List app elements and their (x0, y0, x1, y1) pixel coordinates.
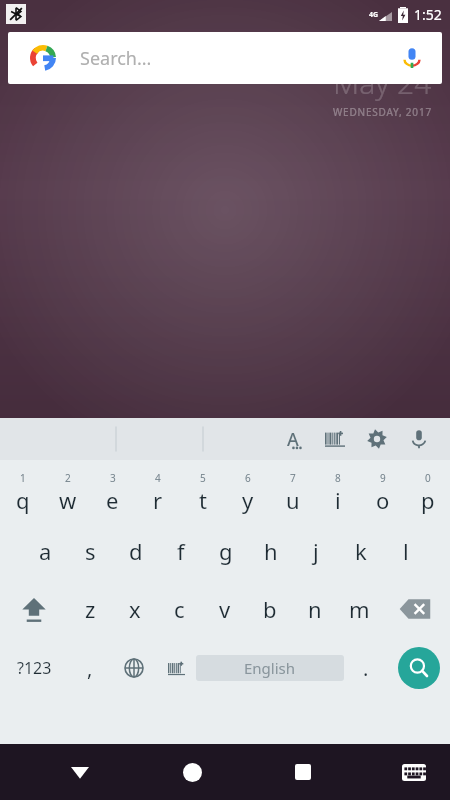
staticText: t (199, 485, 207, 515)
staticText: r (153, 485, 163, 515)
staticText: English (244, 658, 296, 678)
button[interactable]: 9 (360, 464, 405, 522)
button[interactable]: l (383, 522, 428, 580)
staticText: 6 (245, 471, 251, 485)
staticText: q (16, 485, 30, 515)
button[interactable]: Scan barcode (156, 638, 196, 698)
staticText: Search... (80, 46, 152, 71)
button[interactable]: . (344, 638, 388, 698)
staticText: . (363, 655, 369, 682)
staticText: w (59, 485, 77, 515)
button[interactable]: Search (398, 647, 440, 689)
button[interactable]: g (203, 522, 248, 580)
staticText: d (129, 536, 143, 566)
staticText: a (39, 536, 52, 566)
button[interactable]: 3 (90, 464, 135, 522)
button[interactable]: 4 (135, 464, 180, 522)
staticText: x (129, 594, 141, 624)
staticText: f (177, 536, 185, 566)
staticText: , (87, 655, 93, 682)
button[interactable]: j (293, 522, 338, 580)
button[interactable]: Voice search (398, 44, 426, 72)
staticText: u (286, 485, 300, 515)
staticText: m (349, 594, 370, 624)
button[interactable]: Scan barcode (318, 422, 352, 456)
staticText: 1 (20, 471, 26, 485)
staticText: 7 (290, 471, 296, 485)
staticText: 5 (200, 471, 206, 485)
staticText: o (376, 485, 390, 515)
staticText: b (263, 594, 277, 624)
button[interactable]: h (248, 522, 293, 580)
staticText: e (106, 485, 119, 515)
staticText: May 24 (333, 62, 432, 103)
button[interactable]: Backspace (382, 580, 450, 638)
button[interactable]: 0 (405, 464, 450, 522)
button[interactable]: Recent apps (275, 744, 331, 800)
staticText: j (313, 536, 319, 566)
button[interactable]: n (292, 580, 337, 638)
staticText: n (308, 594, 322, 624)
button[interactable]: Hide keyboard (52, 744, 108, 800)
staticText: 3 (110, 471, 116, 485)
button[interactable]: a (22, 522, 68, 580)
button[interactable]: ?123 (0, 638, 68, 698)
button[interactable]: f (158, 522, 203, 580)
staticText: 8 (335, 471, 341, 485)
button[interactable]: 2 (45, 464, 90, 522)
button[interactable]: c (157, 580, 202, 638)
staticText: s (85, 536, 96, 566)
staticText: 1:52 (414, 5, 442, 24)
button[interactable]: 1 (0, 464, 45, 522)
button[interactable]: v (202, 580, 247, 638)
staticText: i (335, 485, 341, 515)
button[interactable]: Home (164, 744, 220, 800)
staticText: p (421, 485, 435, 515)
button[interactable]: Change language (112, 638, 156, 698)
staticText: v (219, 594, 231, 624)
button[interactable]: 7 (270, 464, 315, 522)
staticText: 4 (155, 471, 161, 485)
staticText: 0 (425, 471, 431, 485)
button[interactable]: 8 (315, 464, 360, 522)
button[interactable]: Search... (8, 32, 442, 84)
button[interactable]: 5 (180, 464, 225, 522)
button[interactable]: Switch keyboard (386, 744, 442, 800)
staticText: k (355, 536, 367, 566)
staticText: ?123 (17, 657, 52, 679)
button[interactable]: Text style (276, 422, 310, 456)
staticText: y (242, 485, 254, 515)
button[interactable]: z (68, 580, 112, 638)
button[interactable]: s (68, 522, 113, 580)
staticText: 9 (380, 471, 386, 485)
staticText: A (287, 427, 299, 452)
button[interactable]: d (113, 522, 158, 580)
staticText: g (219, 536, 233, 566)
button[interactable]: 6 (225, 464, 270, 522)
button[interactable]: English (196, 655, 344, 681)
button[interactable]: b (247, 580, 292, 638)
staticText: h (264, 536, 278, 566)
button[interactable]: k (338, 522, 383, 580)
staticText: 2 (65, 471, 71, 485)
staticText: 4G (369, 10, 379, 20)
staticText: c (174, 594, 185, 624)
button[interactable]: Settings (360, 422, 394, 456)
staticText: z (85, 594, 96, 624)
button[interactable]: m (337, 580, 382, 638)
button[interactable]: Voice input (402, 422, 436, 456)
button[interactable]: x (112, 580, 157, 638)
button[interactable]: Shift (0, 580, 68, 638)
button[interactable]: , (68, 638, 112, 698)
staticText: l (403, 536, 409, 566)
staticText: WEDNESDAY, 2017 (333, 105, 432, 119)
